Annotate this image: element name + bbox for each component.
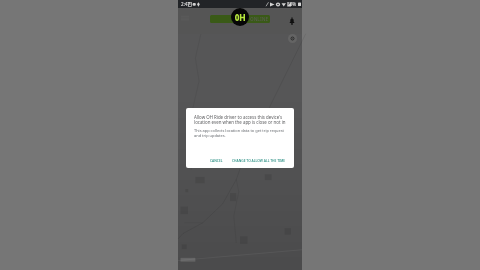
staticText: CHANGE TO ALLOW ALL THE TIME: [232, 158, 286, 162]
button[interactable]: My location: [288, 34, 297, 43]
button[interactable]: Notifications: [286, 15, 298, 27]
staticText: 88%: [287, 1, 297, 7]
button[interactable]: OH Ride: [231, 8, 249, 26]
staticText: Allow OH Ride driver to access this devi…: [194, 114, 289, 125]
staticText: ONLINE: [250, 16, 269, 22]
staticText: CANCEL: [210, 158, 223, 162]
button[interactable]: ONLINE: [210, 15, 270, 23]
button[interactable]: CHANGE TO ALLOW ALL THE TIME: [229, 157, 289, 163]
staticText: 2:47: [181, 1, 191, 7]
button[interactable]: CANCEL: [207, 157, 226, 163]
staticText: This app collects location data to get t…: [194, 128, 289, 138]
